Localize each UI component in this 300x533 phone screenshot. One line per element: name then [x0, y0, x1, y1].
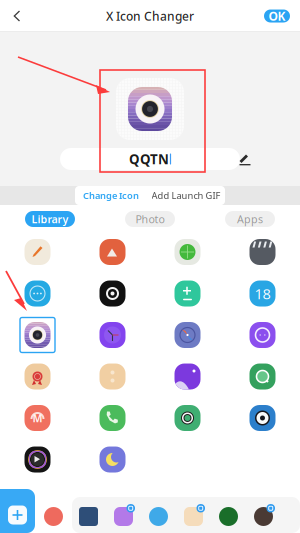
staticText: Library — [31, 212, 68, 226]
button[interactable]: App 2 — [79, 504, 100, 526]
staticText: QQTN — [129, 150, 169, 168]
button[interactable]: App 6 — [219, 504, 240, 526]
staticText: Change Icon — [83, 189, 139, 202]
staticText: 18 — [254, 284, 270, 303]
button[interactable]: App 1 — [44, 504, 65, 526]
button[interactable]: Library — [25, 211, 75, 227]
staticText: M — [32, 411, 42, 425]
button[interactable]: App 4 — [149, 504, 170, 526]
staticText: X Icon Changer — [106, 8, 194, 24]
button[interactable]: App 7 — [254, 504, 275, 526]
button[interactable]: Photo — [125, 211, 175, 227]
staticText: Add Launch GIF — [151, 189, 220, 202]
staticText: Photo — [135, 212, 164, 226]
staticText: OK — [268, 8, 285, 24]
button[interactable]: Edit name — [237, 151, 253, 167]
button[interactable]: Add — [0, 497, 35, 533]
button[interactable]: Apps — [225, 211, 275, 227]
button[interactable]: Back — [0, 1, 34, 31]
button[interactable]: App 5 — [184, 504, 205, 526]
staticText: Apps — [237, 212, 263, 226]
button[interactable]: App 3 — [114, 504, 135, 526]
button[interactable]: OK — [264, 0, 300, 31]
button[interactable]: Add Launch GIF — [147, 186, 225, 205]
button[interactable]: Change Icon — [75, 186, 147, 205]
